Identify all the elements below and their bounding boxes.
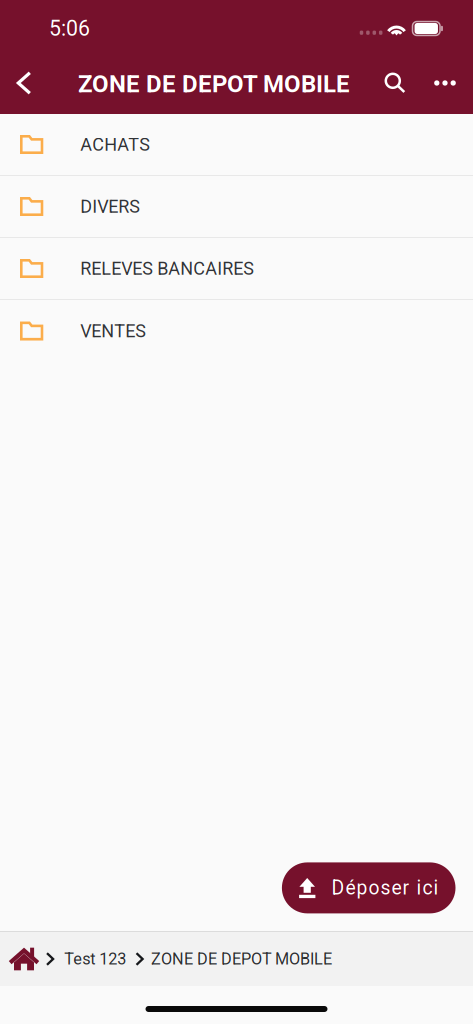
staticText: 5:06 [49, 16, 90, 41]
staticText: ZONE DE DEPOT MOBILE [151, 949, 332, 969]
staticText: Test 123 [64, 949, 126, 969]
button[interactable]: DIVERS [0, 176, 473, 238]
button[interactable]: RELEVES BANCAIRES [0, 238, 473, 300]
staticText: VENTES [80, 320, 146, 342]
button[interactable]: VENTES [0, 300, 473, 362]
staticText: RELEVES BANCAIRES [80, 258, 254, 279]
button[interactable]: Search [369, 57, 421, 114]
button[interactable]: More options [421, 57, 469, 114]
button[interactable]: ACHATS [0, 114, 473, 176]
staticText: ZONE DE DEPOT MOBILE [78, 70, 350, 98]
staticText: Déposer ici [331, 877, 438, 899]
staticText: DIVERS [80, 196, 140, 217]
staticText: ACHATS [80, 134, 150, 155]
button[interactable]: Déposer ici [282, 862, 455, 913]
button[interactable]: Back [0, 57, 48, 114]
